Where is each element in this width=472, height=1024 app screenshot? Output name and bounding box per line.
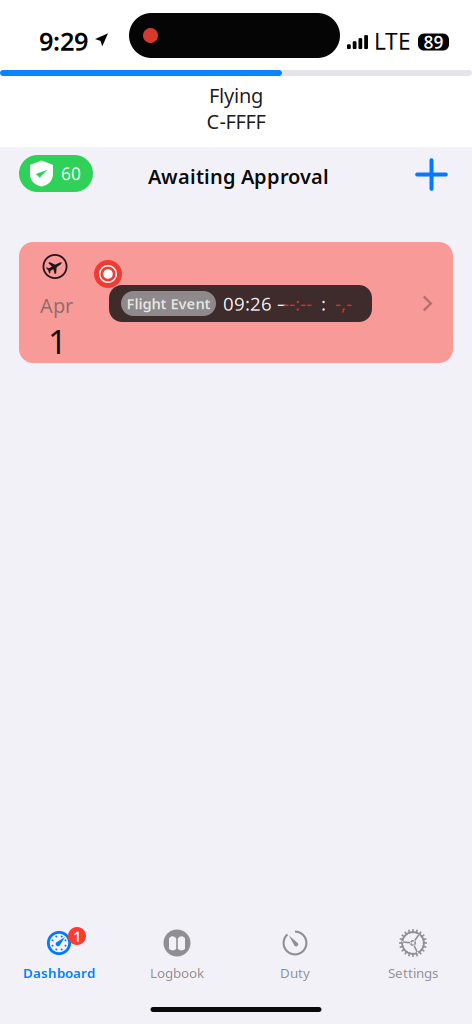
staticText: 89 (423, 30, 443, 53)
staticText: Awaiting Approval (148, 163, 329, 190)
staticText: 1 (73, 926, 81, 946)
staticText: 1 (48, 319, 67, 363)
button[interactable]: Duty (236, 908, 354, 988)
staticText: Settings (388, 964, 438, 982)
button[interactable]: Settings (354, 908, 472, 988)
button[interactable]: Add (407, 150, 456, 199)
staticText: 60 (61, 162, 81, 185)
button[interactable]: 60 (19, 155, 93, 192)
staticText: Duty (280, 964, 310, 982)
staticText: C-FFFF (206, 108, 265, 135)
staticText: --:-- (283, 291, 312, 316)
staticText: Flying (209, 82, 263, 109)
button[interactable]: Apr (19, 242, 453, 363)
staticText: Apr (40, 292, 73, 319)
staticText: LTE (374, 26, 411, 56)
button[interactable]: 1 (0, 908, 118, 988)
staticText: 09:26 – (223, 291, 291, 316)
staticText: : (321, 291, 326, 316)
staticText: Logbook (150, 964, 204, 982)
staticText: 9:29 (39, 24, 88, 58)
button[interactable]: Logbook (118, 908, 236, 988)
staticText: Dashboard (23, 964, 95, 982)
staticText: Flight Event (126, 294, 210, 313)
staticText: -,- (335, 291, 352, 316)
